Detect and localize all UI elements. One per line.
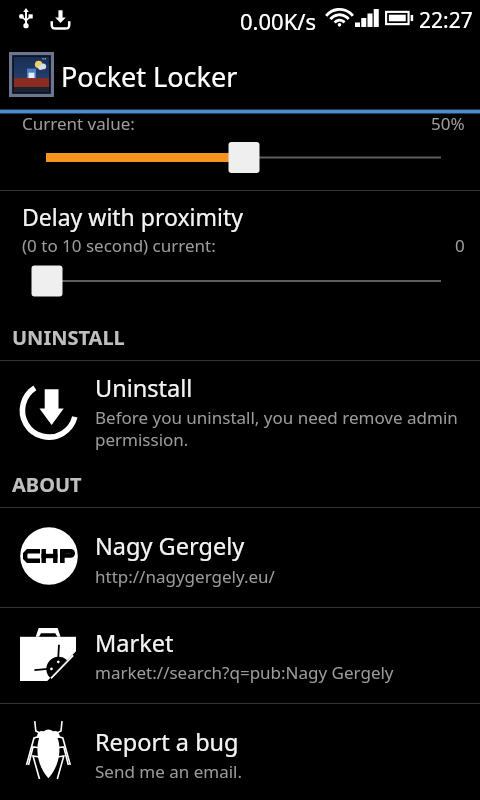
staticText: UNINSTALL [12, 324, 125, 351]
staticText: ABOUT [12, 471, 82, 498]
other: Wi-Fi [326, 9, 353, 27]
staticText: Market [95, 627, 174, 659]
staticText: Report a bug [95, 726, 239, 758]
staticText: market://search?q=pub:Nagy Gergely [95, 661, 394, 684]
staticText: Nagy Gergely [95, 530, 245, 562]
staticText: 0.00K/s [240, 6, 316, 36]
staticText: Current value: [22, 112, 135, 135]
other: Downloading [49, 8, 72, 30]
button[interactable]: Uninstall [0, 361, 480, 455]
staticText: Send me an email. [95, 760, 243, 783]
staticText: 0 [455, 234, 465, 257]
button[interactable]: Report a bug [0, 704, 480, 800]
other: Battery [385, 9, 413, 27]
staticText: (0 to 10 second) current: [22, 234, 216, 257]
staticText: http://nagygergely.eu/ [95, 565, 275, 588]
staticText: Pocket Locker [61, 58, 238, 95]
other: Signal strength [355, 9, 379, 27]
staticText: 22:27 [419, 6, 473, 35]
staticText: Delay with proximity [22, 201, 244, 232]
button[interactable]: Pocket Locker [0, 0, 480, 109]
staticText: Before you uninstall, you need remove ad… [95, 406, 458, 451]
staticText: Uninstall [95, 372, 193, 404]
button[interactable]: Market [0, 608, 480, 703]
staticText: 50% [431, 112, 465, 135]
button[interactable]: Nagy Gergely [0, 508, 480, 607]
other: USB connected [19, 8, 33, 29]
